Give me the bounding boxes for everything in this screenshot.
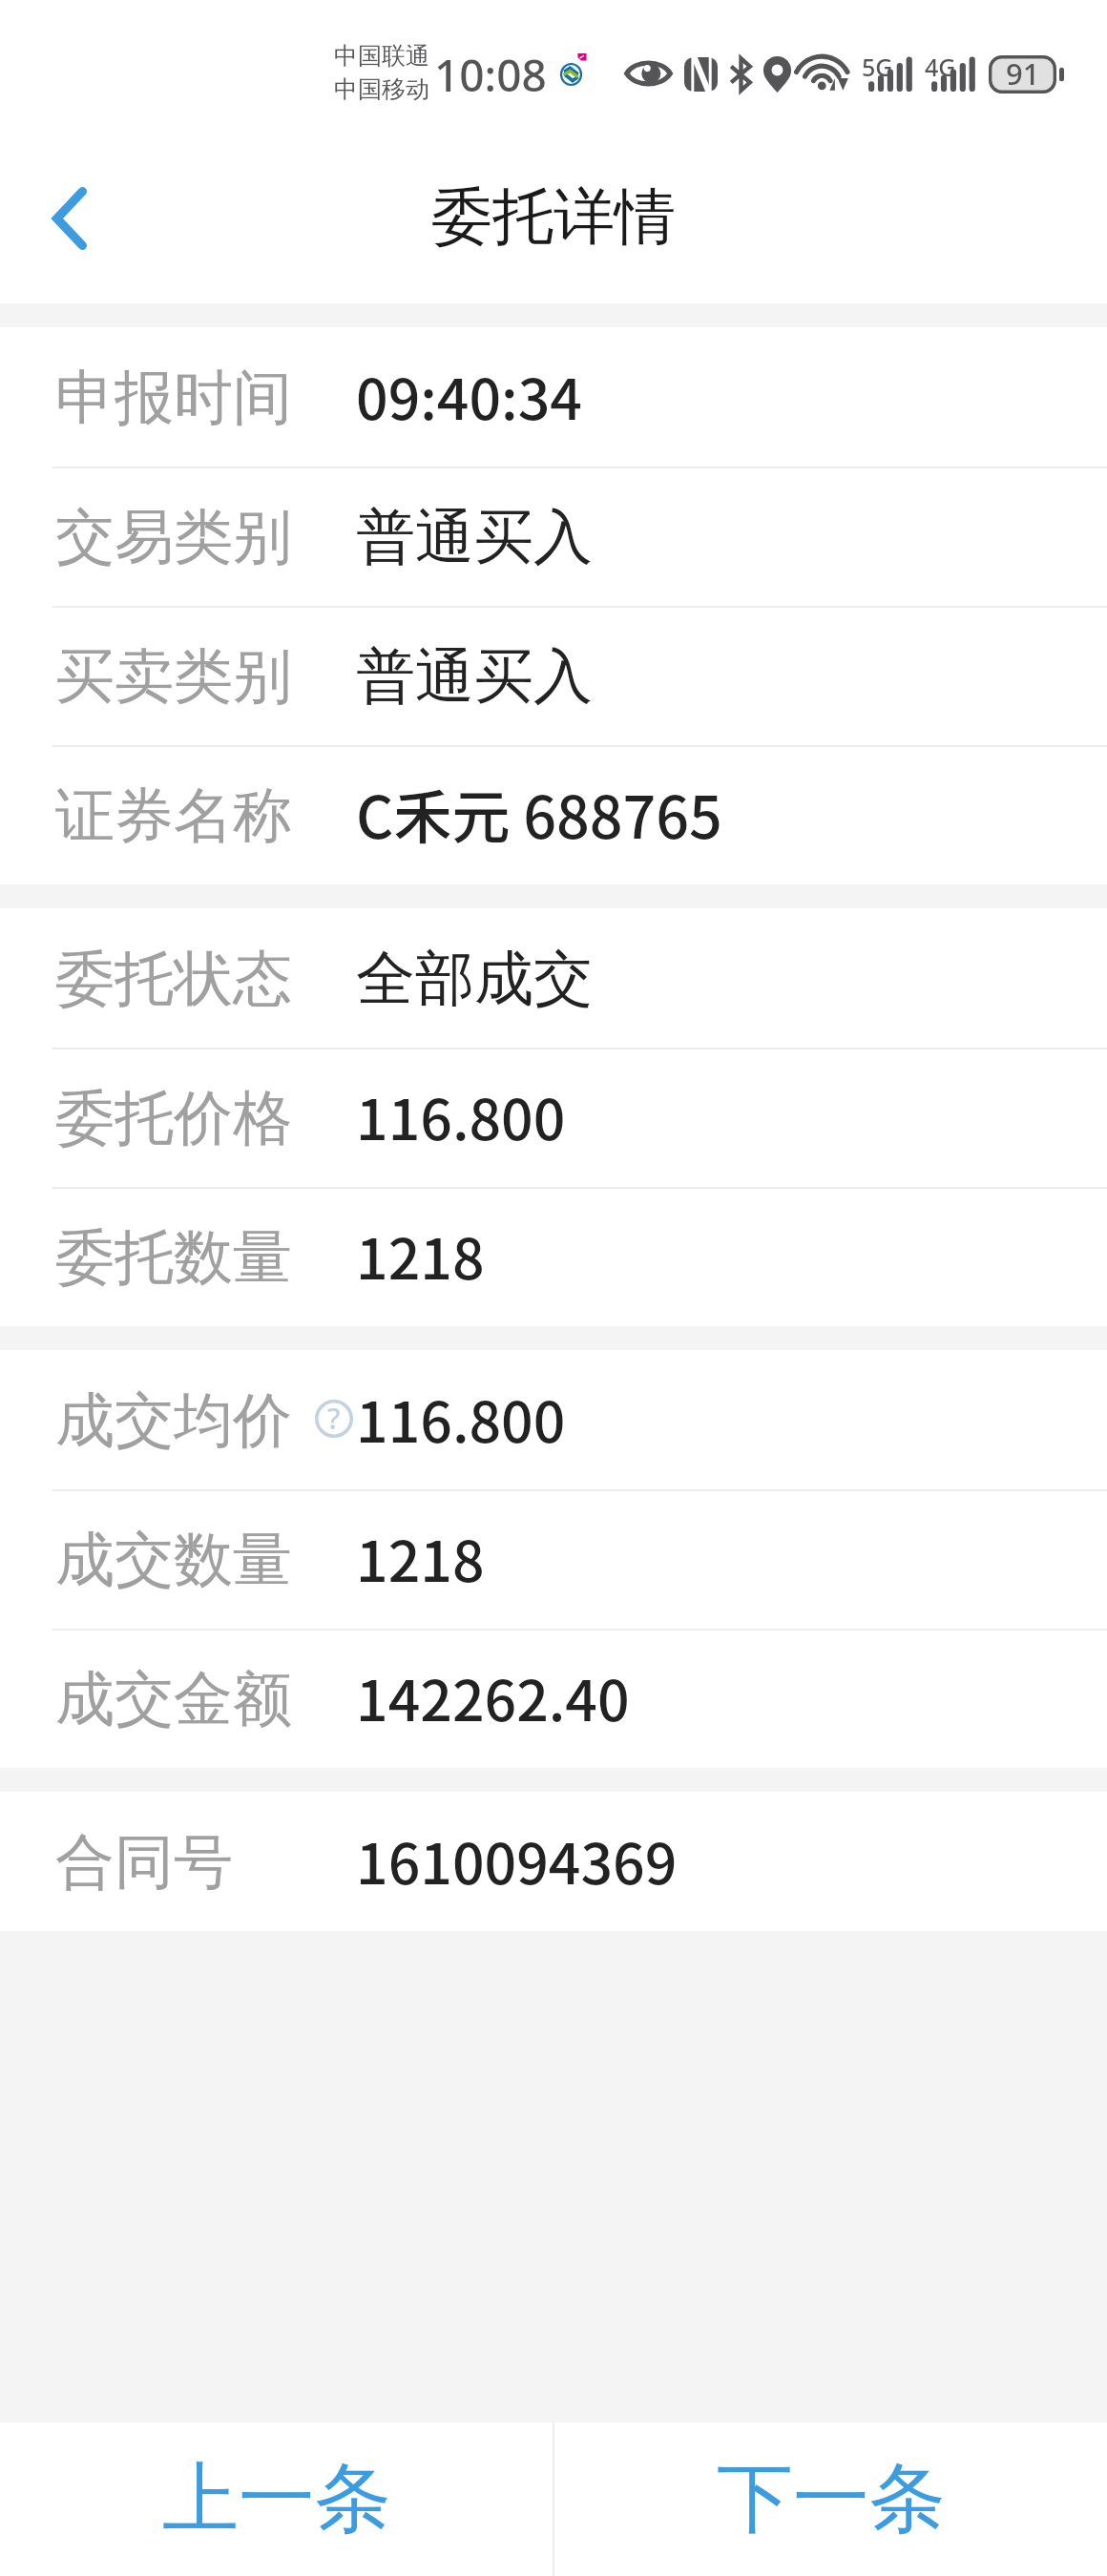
staticText: 成交金额 [55,1662,292,1736]
button[interactable]: 成交金额 [0,1629,1107,1768]
staticText: 申报时间 [55,361,292,435]
staticText: 委托状态 [55,942,292,1016]
staticText: 成交数量 [55,1523,292,1597]
staticText: 下一条 [717,2451,946,2547]
button[interactable]: 返回 [19,168,119,268]
staticText: 116.800 [356,1378,566,1459]
button[interactable]: 委托状态 [0,908,1107,1048]
staticText: 5G [862,51,893,83]
staticText: 成交均价 [55,1383,292,1458]
button[interactable]: 上一条 [0,2422,553,2576]
button[interactable]: 申报时间 [0,327,1107,467]
button[interactable]: 委托价格 [0,1048,1107,1187]
staticText: ? [327,1399,341,1437]
staticText: 委托价格 [55,1081,292,1155]
staticText: 上一条 [162,2451,391,2547]
staticText: 交易类别 [55,500,292,574]
staticText: 142262.40 [356,1656,630,1737]
staticText: 委托详情 [431,178,676,256]
button[interactable]: 成交均价 [0,1350,1107,1489]
staticText: 委托数量 [55,1220,292,1295]
button[interactable]: 证券名称 [0,745,1107,884]
staticText: 09:40:34 [356,355,582,436]
staticText: C禾元 688765 [356,771,722,855]
button[interactable]: 下一条 [554,2422,1107,2576]
staticText: 买卖类别 [55,639,292,714]
staticText: 1218 [356,1215,485,1296]
staticText: 10:08 [434,45,547,105]
staticText: 4G [925,51,956,83]
staticText: 116.800 [356,1075,566,1156]
staticText: 1218 [356,1517,485,1598]
staticText: 中国移动 [334,74,429,104]
staticText: 证券名称 [55,779,292,853]
button[interactable]: 说明 [315,1400,353,1438]
button[interactable]: 交易类别 [0,467,1107,606]
staticText: 普通买入 [356,639,593,714]
button[interactable]: 委托数量 [0,1187,1107,1326]
button[interactable]: 合同号 [0,1792,1107,1931]
staticText: 91 [1006,53,1040,93]
button[interactable]: 买卖类别 [0,606,1107,745]
staticText: 中国联通 [334,41,429,71]
button[interactable]: 成交数量 [0,1489,1107,1629]
staticText: 普通买入 [356,500,593,574]
staticText: 全部成交 [356,942,593,1016]
staticText: 合同号 [55,1825,233,1900]
staticText: 1610094369 [356,1819,678,1901]
